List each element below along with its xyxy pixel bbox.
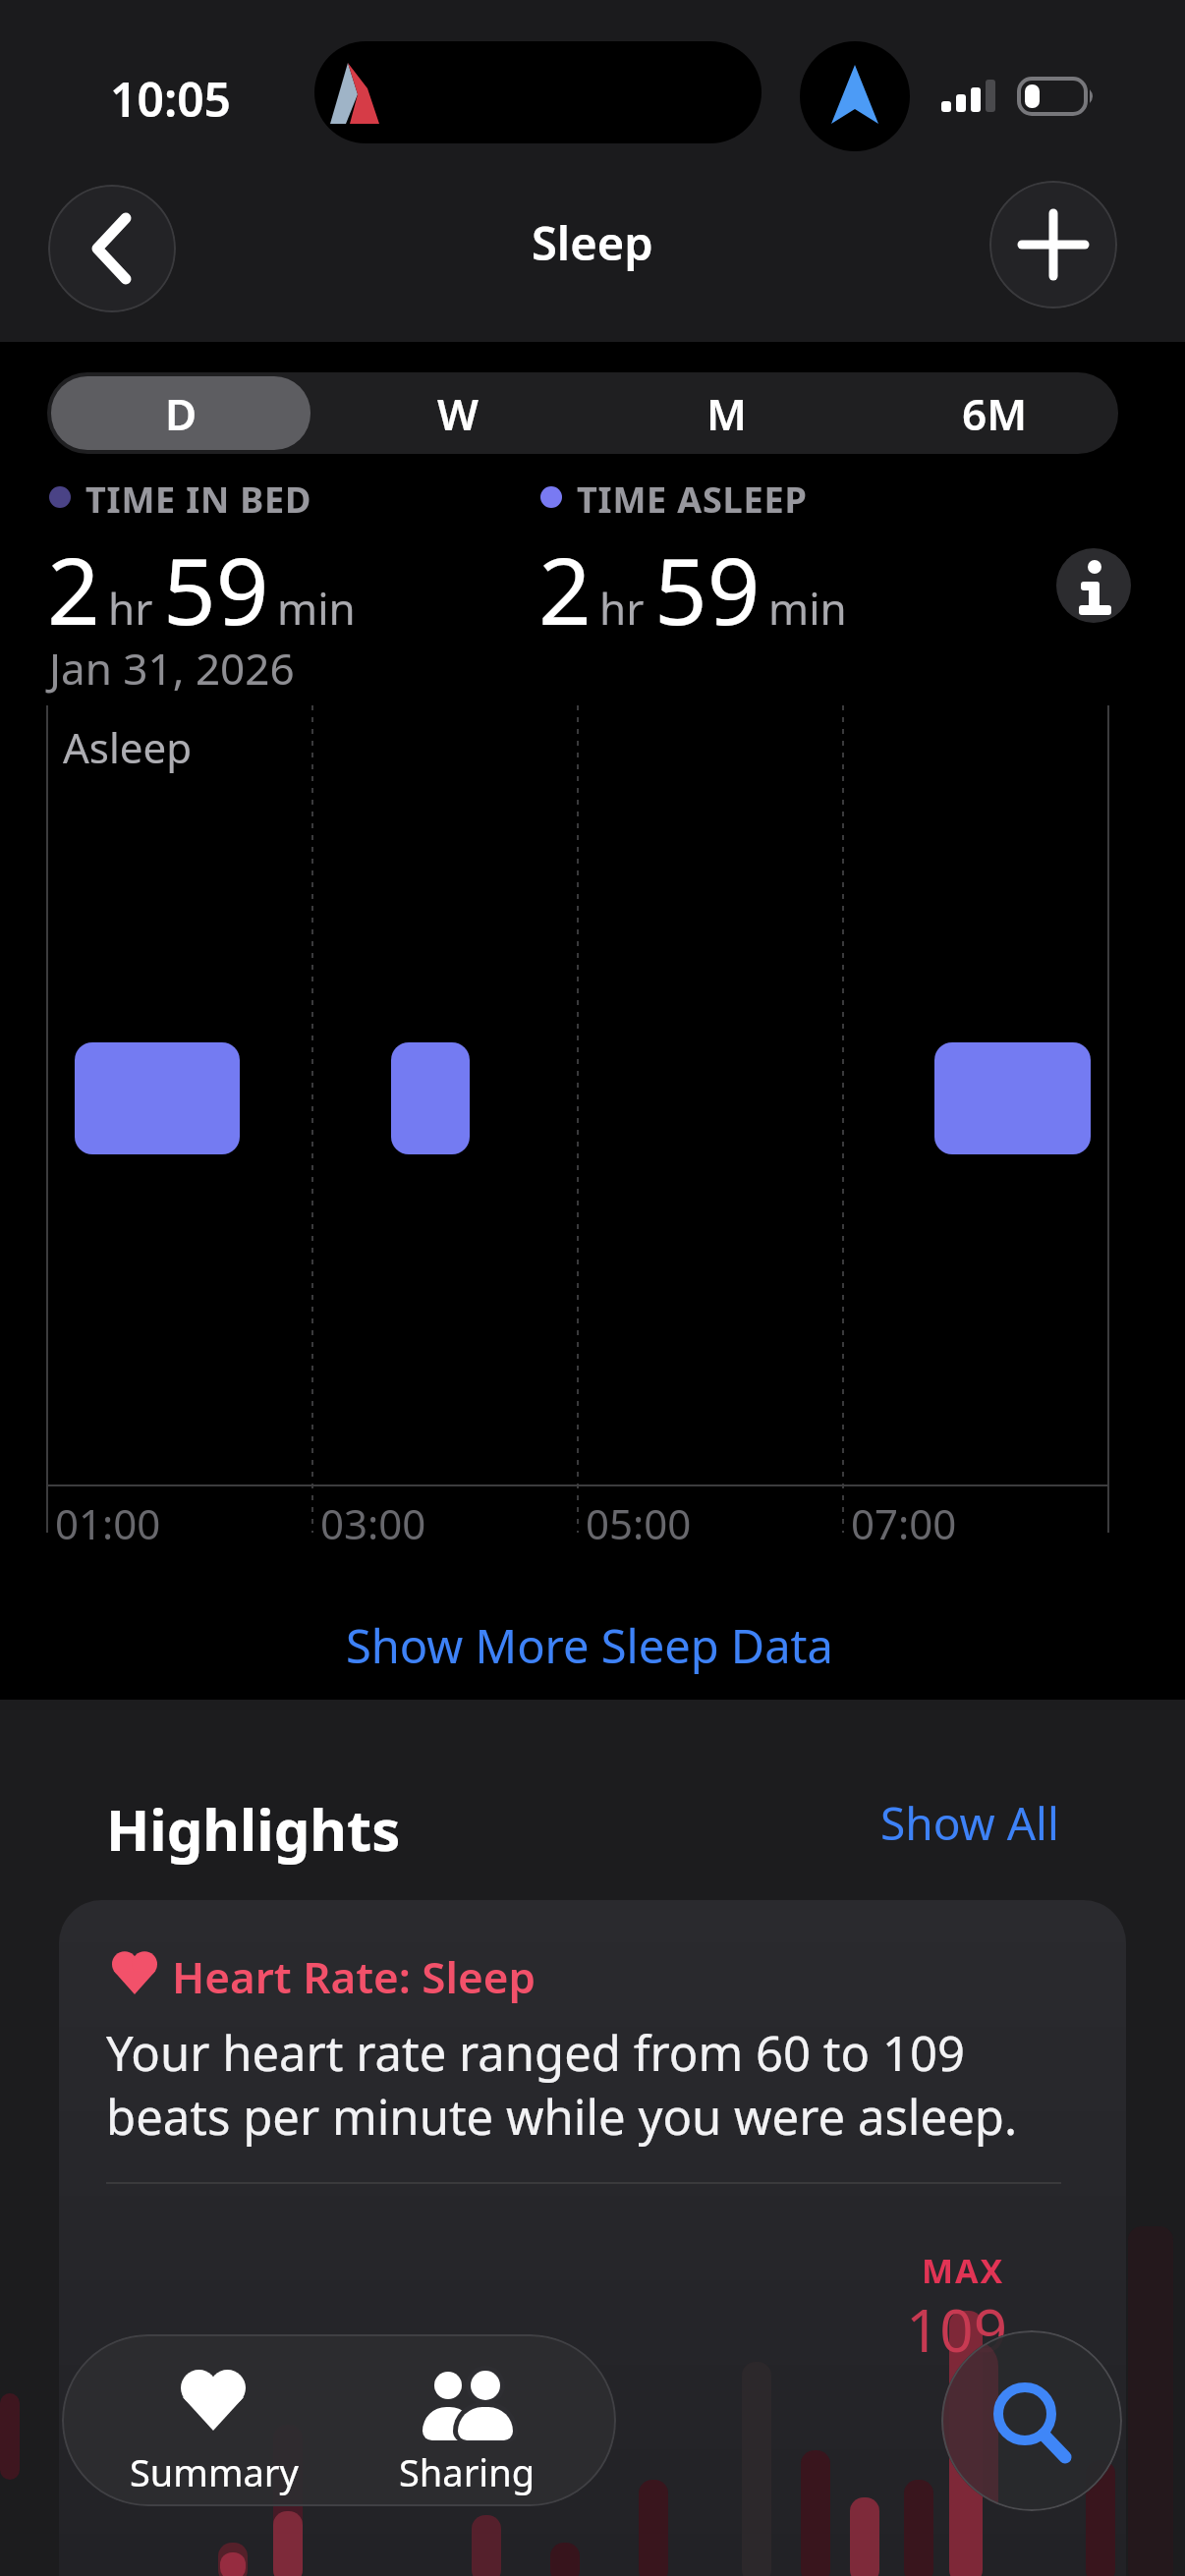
staticText: 05:00	[586, 1495, 692, 1551]
staticText: W	[437, 384, 479, 443]
button[interactable]: W	[324, 376, 592, 450]
staticText: 01:00	[55, 1495, 161, 1551]
staticText: Show More Sleep Data	[346, 1614, 833, 1677]
button[interactable]: 6M	[861, 376, 1128, 450]
button[interactable]: Sharing	[362, 2348, 573, 2495]
staticText: hr	[108, 579, 153, 638]
button[interactable]	[48, 185, 176, 312]
staticText: Show All	[880, 1792, 1059, 1854]
staticText: 109	[906, 2289, 1007, 2370]
staticText: Summary	[130, 2446, 299, 2497]
button[interactable]: Show All	[833, 1788, 1059, 1857]
staticText: MAX	[922, 2248, 1005, 2293]
staticText: Asleep	[63, 719, 192, 775]
staticText: M	[706, 384, 747, 443]
staticText: Sharing	[399, 2446, 536, 2497]
staticText: hr	[599, 579, 645, 638]
button[interactable]: M	[592, 376, 860, 450]
staticText: 07:00	[851, 1495, 957, 1551]
button[interactable]	[941, 2330, 1122, 2511]
button[interactable]	[1056, 548, 1131, 623]
staticText: 2	[47, 527, 100, 652]
staticText: TIME ASLEEP	[577, 476, 808, 524]
staticText: 59	[654, 527, 761, 652]
staticText: TIME IN BED	[85, 476, 312, 524]
staticText: min	[277, 579, 356, 638]
staticText: 10:05	[110, 67, 232, 131]
staticText: 6M	[962, 384, 1028, 443]
staticText: min	[768, 579, 847, 638]
staticText: D	[165, 384, 197, 443]
staticText: Heart Rate: Sleep	[172, 1947, 536, 2006]
button[interactable]: Show More Sleep Data	[295, 1601, 884, 1690]
button[interactable]: Summary	[108, 2348, 319, 2495]
button[interactable]	[989, 181, 1117, 308]
staticText: Your heart rate ranged from 60 to 109 be…	[106, 2020, 1018, 2149]
staticText: Sleep	[532, 211, 653, 274]
button[interactable]	[59, 1900, 1126, 2576]
staticText: 03:00	[320, 1495, 426, 1551]
staticText: Highlights	[106, 1790, 401, 1868]
button[interactable]: D	[51, 376, 310, 450]
staticText: 2	[538, 527, 592, 652]
staticText: Jan 31, 2026	[49, 639, 295, 698]
staticText: 59	[163, 527, 269, 652]
